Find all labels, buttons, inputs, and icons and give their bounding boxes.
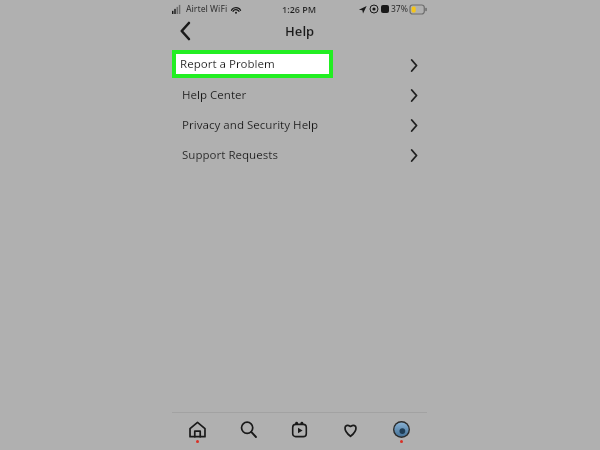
- button[interactable]: Search: [223, 413, 274, 450]
- button[interactable]: Privacy and Security Help: [172, 110, 427, 140]
- button[interactable]: Report a Problem: [172, 50, 427, 80]
- staticText: Privacy and Security Help: [182, 117, 319, 133]
- button[interactable]: Support Requests: [172, 140, 427, 170]
- button[interactable]: Help Center: [172, 80, 427, 110]
- button[interactable]: Back: [172, 18, 198, 44]
- staticText: Help: [285, 22, 315, 40]
- staticText: Help Center: [182, 87, 247, 103]
- staticText: Airtel WiFi: [186, 3, 228, 15]
- button[interactable]: Reels: [274, 413, 325, 450]
- staticText: 1:26 PM: [282, 3, 317, 15]
- button[interactable]: Home: [172, 413, 223, 450]
- staticText: Report a Problem: [180, 56, 275, 72]
- button[interactable]: Activity: [325, 413, 376, 450]
- staticText: Support Requests: [182, 147, 278, 163]
- button[interactable]: Profile: [376, 413, 427, 450]
- staticText: 37%: [391, 3, 408, 15]
